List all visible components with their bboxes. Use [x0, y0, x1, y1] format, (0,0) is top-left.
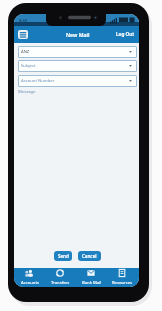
staticText: Transfers: [51, 280, 70, 286]
staticText: New Mail: [66, 31, 90, 38]
staticText: Bank Mail: [82, 280, 102, 286]
staticText: Accounts: [21, 280, 39, 286]
button[interactable]: Subject: [18, 60, 137, 72]
button[interactable]: Resources: [107, 268, 138, 287]
staticText: 4:40: [19, 18, 27, 23]
staticText: Log Out: [116, 31, 135, 37]
button[interactable]: Log Out: [114, 29, 137, 39]
button[interactable]: Accounts: [14, 268, 45, 287]
button[interactable]: Cancel: [78, 251, 101, 261]
staticText: Account Number: [21, 78, 55, 84]
button[interactable]: Transfers: [45, 268, 76, 287]
staticText: Resources: [112, 280, 133, 286]
button[interactable]: [18, 30, 28, 39]
staticText: Message: [18, 89, 36, 95]
button[interactable]: ANZ: [18, 46, 137, 58]
staticText: Send: [58, 253, 69, 259]
staticText: Subject: [21, 63, 36, 69]
button[interactable]: Bank Mail: [76, 268, 107, 287]
staticText: ANZ: [21, 49, 30, 55]
button[interactable]: Account Number: [18, 75, 137, 87]
staticText: Cancel: [82, 253, 97, 259]
button[interactable]: Send: [54, 251, 72, 261]
